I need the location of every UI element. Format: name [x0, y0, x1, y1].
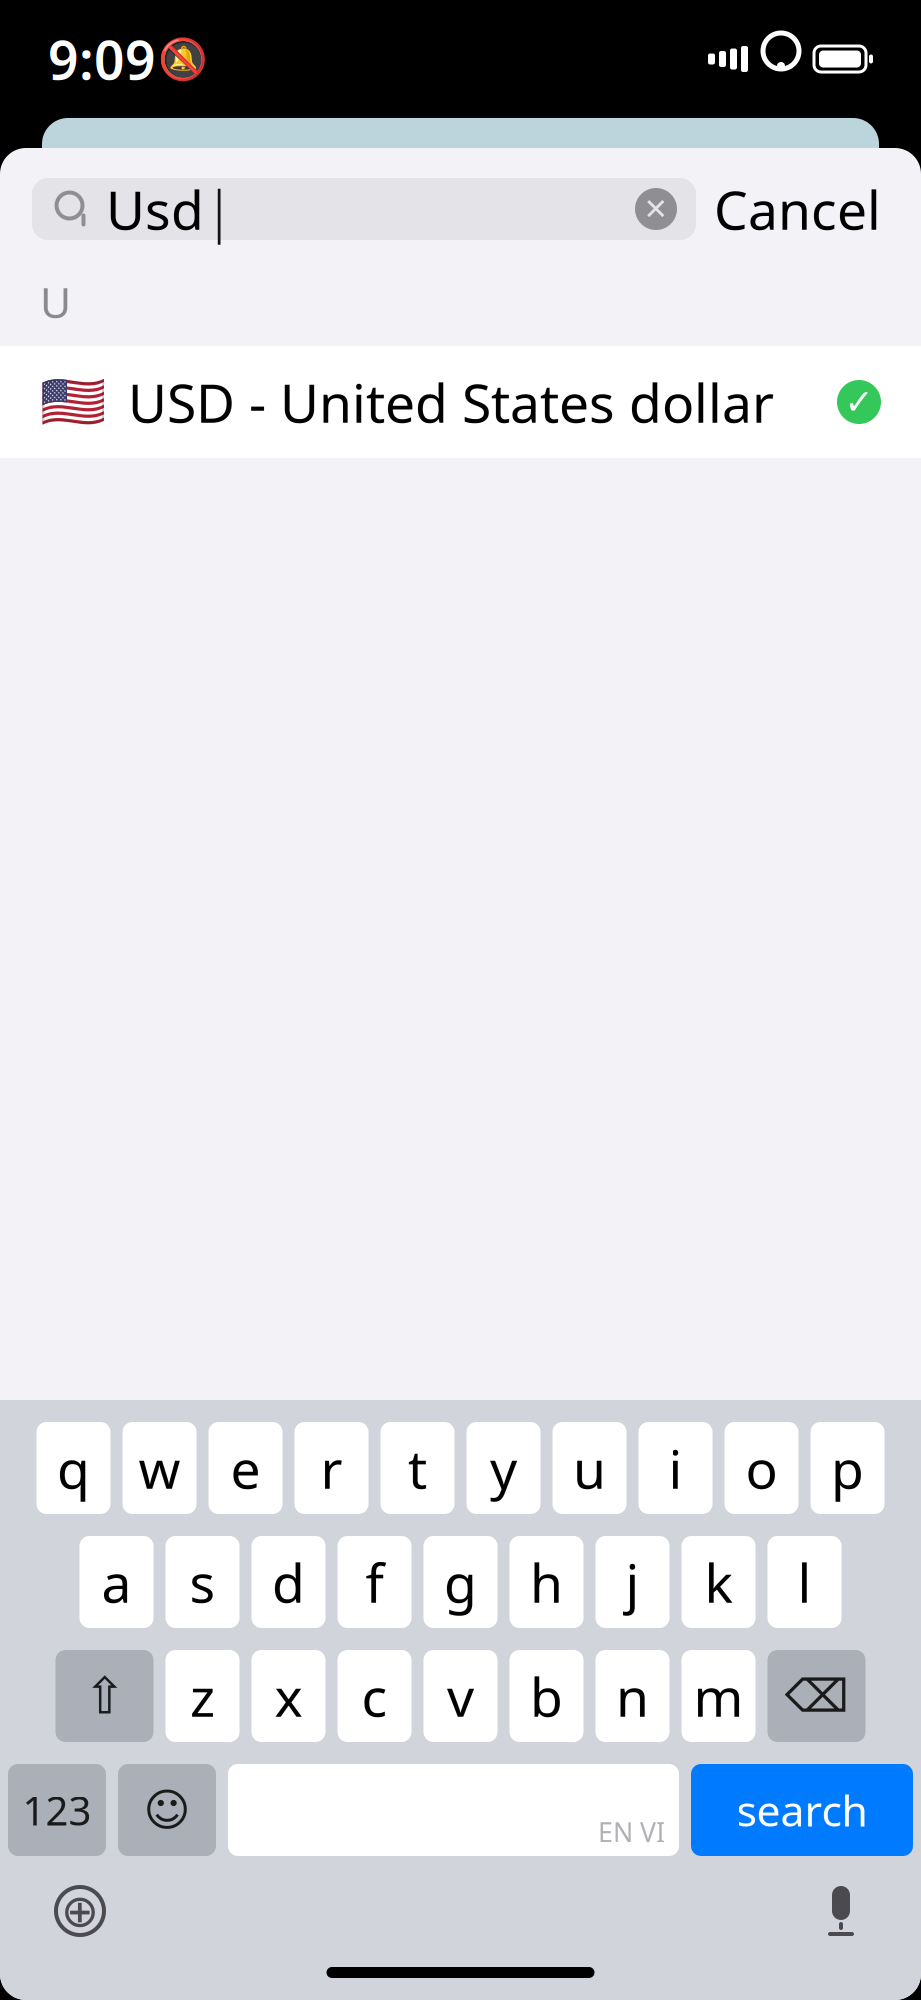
staticText: u [573, 1433, 606, 1503]
button[interactable]: v [423, 1650, 497, 1742]
staticText: t [408, 1433, 427, 1503]
button[interactable]: Cancel [696, 178, 899, 240]
staticText: ⊕ [61, 1885, 99, 1937]
staticText: ✕ [643, 192, 668, 226]
button[interactable]: w [122, 1422, 196, 1514]
button[interactable]: i [638, 1422, 712, 1514]
button[interactable]: o [724, 1422, 798, 1514]
staticText: w [138, 1433, 180, 1503]
button[interactable]: j [595, 1536, 669, 1628]
button[interactable]: z [165, 1650, 239, 1742]
staticText: 🔕 [158, 36, 208, 82]
staticText: ⌫ [784, 1670, 848, 1722]
button[interactable]: Delete [767, 1650, 865, 1742]
button[interactable]: x [251, 1650, 325, 1742]
staticText: o [745, 1433, 777, 1503]
staticText: e [230, 1433, 260, 1503]
staticText: search [736, 1782, 867, 1838]
staticText: Cancel [714, 174, 881, 244]
staticText: USD - United States dollar [128, 367, 774, 437]
button[interactable]: k [681, 1536, 755, 1628]
button[interactable]: Clear text [626, 179, 686, 239]
staticText: | [204, 172, 234, 246]
staticText: 9:09 [48, 24, 156, 94]
staticText: ☺ [143, 1784, 190, 1836]
staticText: v [447, 1661, 474, 1731]
staticText: s [189, 1547, 215, 1617]
staticText: z [190, 1661, 215, 1731]
staticText: l [797, 1547, 811, 1617]
staticText: 🇺🇸 [40, 371, 106, 432]
staticText: c [361, 1661, 387, 1731]
staticText: q [57, 1433, 90, 1503]
button[interactable]: g [423, 1536, 497, 1628]
button[interactable]: Space [228, 1764, 679, 1856]
staticText: i [668, 1433, 682, 1503]
staticText: b [530, 1661, 563, 1731]
staticText: y [490, 1433, 517, 1503]
staticText: n [616, 1661, 649, 1731]
staticText: a [101, 1547, 131, 1617]
button[interactable]: b [509, 1650, 583, 1742]
staticText: h [530, 1547, 563, 1617]
staticText: r [320, 1433, 342, 1503]
staticText: 123 [22, 1783, 91, 1836]
button[interactable]: Change keyboard [40, 1876, 120, 1946]
button[interactable]: n [595, 1650, 669, 1742]
staticText: p [831, 1433, 864, 1503]
button[interactable]: r [294, 1422, 368, 1514]
staticText: f [365, 1547, 383, 1617]
button[interactable]: y [466, 1422, 540, 1514]
staticText: EN VI [598, 1814, 665, 1850]
button[interactable]: 123 [8, 1764, 106, 1856]
staticText: Usd [106, 174, 204, 244]
button[interactable]: u [552, 1422, 626, 1514]
staticText: j [625, 1547, 639, 1617]
staticText: x [274, 1661, 302, 1731]
button[interactable]: Shift [55, 1650, 153, 1742]
button[interactable]: e [208, 1422, 282, 1514]
button[interactable]: t [380, 1422, 454, 1514]
button[interactable]: p [810, 1422, 884, 1514]
button[interactable]: l [767, 1536, 841, 1628]
button[interactable]: q [36, 1422, 110, 1514]
button[interactable]: h [509, 1536, 583, 1628]
button[interactable]: Dictation [801, 1876, 881, 1946]
button[interactable]: d [251, 1536, 325, 1628]
button[interactable]: Emoji [118, 1764, 216, 1856]
button[interactable]: s [165, 1536, 239, 1628]
button[interactable]: m [681, 1650, 755, 1742]
button[interactable]: f [337, 1536, 411, 1628]
staticText: ⇧ [83, 1667, 125, 1725]
staticText: k [704, 1547, 732, 1617]
button[interactable]: search [691, 1764, 913, 1856]
staticText: g [444, 1547, 477, 1617]
button[interactable]: 🇺🇸 [0, 346, 921, 458]
staticText: m [693, 1661, 743, 1731]
staticText: ✓ [844, 382, 873, 422]
button[interactable]: a [79, 1536, 153, 1628]
staticText: U [40, 273, 71, 330]
button[interactable]: c [337, 1650, 411, 1742]
staticText: d [272, 1547, 305, 1617]
